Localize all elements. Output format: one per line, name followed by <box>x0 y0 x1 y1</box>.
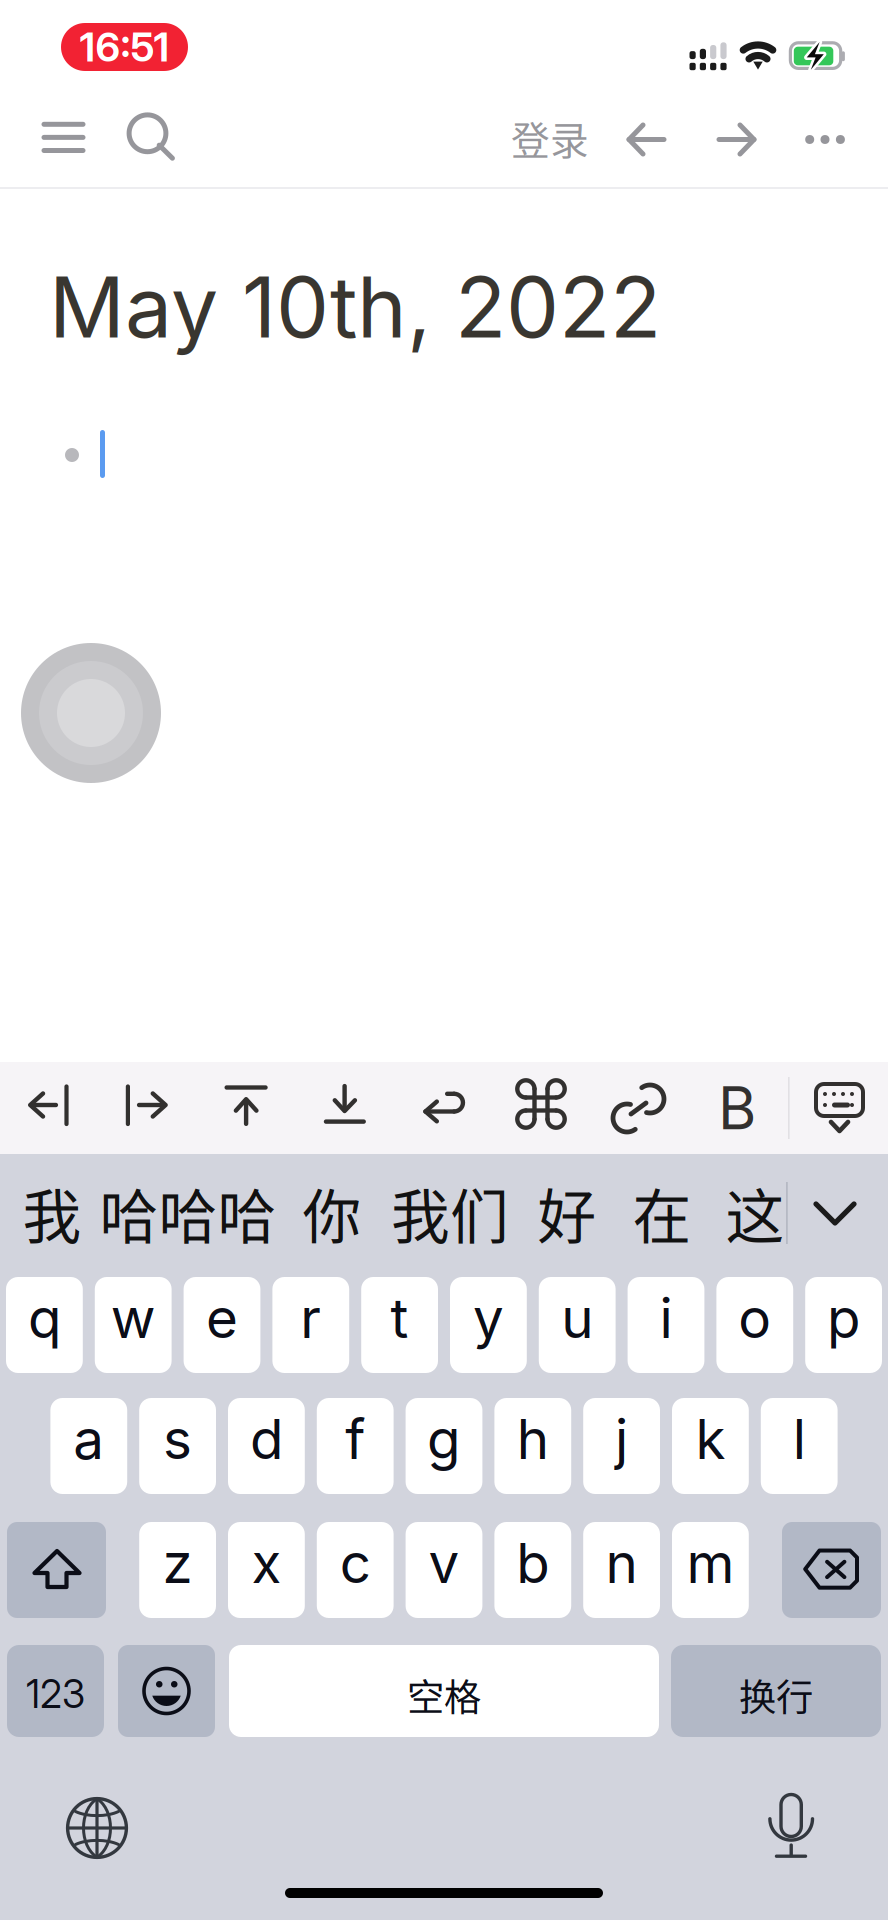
staticText: 空格 <box>407 1668 481 1722</box>
button[interactable]: Dictate <box>769 1793 815 1861</box>
button[interactable]: l <box>761 1398 838 1494</box>
button[interactable]: 这 <box>715 1154 795 1272</box>
staticText: o <box>738 1285 771 1351</box>
button[interactable]: Collapse candidates <box>790 1154 886 1272</box>
staticText: 这 <box>725 1170 784 1255</box>
button[interactable]: z <box>139 1522 216 1618</box>
button[interactable]: Search <box>108 98 188 178</box>
button[interactable]: x <box>228 1522 305 1618</box>
button[interactable]: Command <box>492 1062 590 1154</box>
button[interactable]: 在 <box>622 1154 702 1272</box>
staticText: 我 <box>22 1170 81 1255</box>
button[interactable]: s <box>139 1398 216 1494</box>
staticText: x <box>251 1530 281 1596</box>
staticText: v <box>428 1530 459 1596</box>
button[interactable]: r <box>272 1277 349 1373</box>
staticText: m <box>686 1530 734 1596</box>
staticText: z <box>163 1530 193 1596</box>
button[interactable]: 好 <box>527 1154 607 1272</box>
staticText: u <box>561 1285 593 1351</box>
button[interactable]: More <box>785 98 865 178</box>
staticText: 在 <box>632 1170 691 1255</box>
button[interactable]: Hide keyboard <box>790 1062 888 1154</box>
button[interactable]: e <box>184 1277 260 1373</box>
button[interactable]: h <box>494 1398 571 1494</box>
staticText: e <box>206 1285 238 1351</box>
button[interactable]: Move to bottom <box>296 1062 394 1154</box>
button[interactable]: Emoji <box>118 1645 215 1737</box>
button[interactable]: Switch keyboard <box>67 1798 127 1858</box>
staticText: 16:51 <box>79 23 169 71</box>
staticText: 好 <box>537 1170 596 1255</box>
staticText: d <box>250 1406 283 1472</box>
staticText: May 10th, 2022 <box>49 256 661 358</box>
button[interactable]: 我们 <box>390 1154 510 1272</box>
button[interactable]: Return <box>394 1062 492 1154</box>
button[interactable]: 空格 <box>229 1645 659 1737</box>
button[interactable]: g <box>406 1398 482 1494</box>
button[interactable]: b <box>494 1522 571 1618</box>
staticText: 哈哈哈 <box>99 1170 276 1255</box>
staticText: B <box>718 1072 756 1143</box>
button[interactable]: j <box>583 1398 660 1494</box>
staticText: g <box>427 1406 461 1472</box>
button[interactable]: p <box>805 1277 882 1373</box>
staticText: h <box>517 1406 549 1472</box>
button[interactable]: Delete <box>782 1522 881 1618</box>
button[interactable]: y <box>450 1277 527 1373</box>
button[interactable]: Outdent <box>2 1062 100 1154</box>
staticText: 登录 <box>511 110 589 166</box>
staticText: k <box>695 1406 725 1472</box>
button[interactable]: 换行 <box>671 1645 881 1737</box>
button[interactable]: 123 <box>7 1645 104 1737</box>
staticText: n <box>606 1530 638 1596</box>
button[interactable]: Indent <box>100 1062 198 1154</box>
staticText: q <box>28 1285 61 1351</box>
button[interactable]: Menu <box>23 98 103 178</box>
staticText: 换行 <box>739 1668 813 1722</box>
staticText: 你 <box>302 1170 361 1255</box>
button[interactable]: Forward <box>697 98 777 178</box>
button[interactable]: 登录 <box>505 98 595 178</box>
button[interactable]: 哈哈哈 <box>98 1154 278 1272</box>
button[interactable]: 你 <box>292 1154 372 1272</box>
staticText: t <box>391 1285 409 1351</box>
staticText: s <box>163 1406 192 1472</box>
staticText: 我们 <box>391 1170 509 1255</box>
staticText: 123 <box>26 1671 85 1717</box>
button[interactable]: v <box>406 1522 482 1618</box>
button[interactable]: a <box>50 1398 127 1494</box>
staticText: j <box>615 1406 628 1472</box>
button[interactable]: u <box>539 1277 616 1373</box>
button[interactable]: Move to top <box>198 1062 296 1154</box>
button[interactable]: d <box>228 1398 305 1494</box>
button[interactable]: 我 <box>12 1154 92 1272</box>
button[interactable]: i <box>628 1277 704 1373</box>
button[interactable]: m <box>672 1522 749 1618</box>
button[interactable]: w <box>95 1277 172 1373</box>
button[interactable]: q <box>6 1277 83 1373</box>
staticText: i <box>659 1285 672 1351</box>
staticText: l <box>793 1406 806 1472</box>
staticText: a <box>73 1406 104 1472</box>
staticText: w <box>111 1285 156 1351</box>
button[interactable]: Shift <box>7 1522 106 1618</box>
staticText: b <box>516 1530 549 1596</box>
button[interactable]: f <box>317 1398 394 1494</box>
button[interactable]: Bold <box>688 1062 786 1154</box>
button[interactable]: k <box>672 1398 749 1494</box>
staticText: c <box>340 1530 371 1596</box>
button[interactable]: Back <box>607 98 687 178</box>
button[interactable]: o <box>716 1277 793 1373</box>
staticText: p <box>827 1285 860 1351</box>
button[interactable]: c <box>317 1522 394 1618</box>
button[interactable]: Link <box>590 1062 688 1154</box>
button[interactable]: t <box>361 1277 438 1373</box>
staticText: r <box>300 1285 321 1351</box>
staticText: f <box>345 1406 365 1472</box>
staticText: y <box>473 1285 504 1351</box>
button[interactable]: n <box>583 1522 660 1618</box>
